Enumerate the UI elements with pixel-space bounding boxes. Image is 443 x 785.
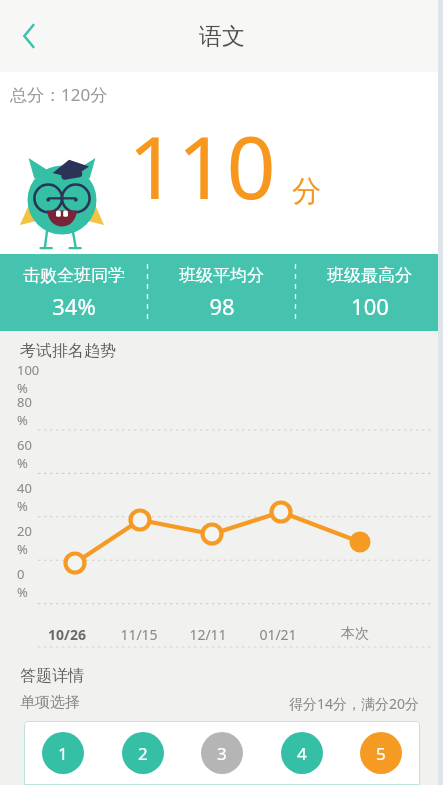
staticText: 98	[209, 291, 235, 321]
staticText: %	[17, 540, 28, 558]
staticText: 0	[17, 565, 25, 583]
staticText: 11/15	[115, 625, 163, 644]
staticText: 5	[376, 742, 386, 765]
staticText: 60	[17, 436, 32, 454]
button[interactable]: Back	[6, 14, 50, 58]
staticText: 击败全班同学	[23, 265, 125, 286]
staticText: 答题详情	[20, 666, 84, 686]
staticText: %	[17, 497, 28, 515]
staticText: 分	[292, 173, 321, 210]
staticText: 3	[217, 742, 227, 765]
staticText: %	[17, 379, 28, 393]
staticText: 100	[351, 291, 389, 321]
staticText: 语文	[199, 22, 245, 51]
staticText: 总分：120分	[10, 83, 108, 106]
staticText: %	[17, 411, 28, 429]
staticText: 本次	[331, 625, 379, 643]
button[interactable]: 2	[122, 732, 164, 774]
staticText: 10/26	[43, 625, 91, 644]
button[interactable]: 1	[42, 732, 84, 774]
button[interactable]: 4	[281, 732, 323, 774]
staticText: 班级平均分	[179, 265, 264, 286]
staticText: 40	[17, 479, 32, 497]
staticText: 34%	[52, 291, 96, 321]
button[interactable]: 3	[201, 732, 243, 774]
staticText: %	[17, 454, 28, 472]
staticText: 12/11	[184, 625, 232, 644]
staticText: 得分14分，满分20分	[289, 694, 420, 713]
button[interactable]: 击败全班同学	[0, 254, 147, 331]
staticText: 4	[297, 742, 307, 765]
staticText: 80	[17, 393, 32, 411]
button[interactable]: 5	[360, 732, 402, 774]
staticText: 100	[17, 361, 40, 379]
staticText: 考试排名趋势	[20, 341, 116, 361]
button[interactable]: 班级最高分	[296, 254, 443, 331]
staticText: 20	[17, 522, 32, 540]
staticText: 110	[128, 107, 276, 224]
staticText: 班级最高分	[327, 265, 412, 286]
staticText: 2	[138, 742, 148, 765]
staticText: %	[17, 583, 28, 601]
staticText: 单项选择	[20, 693, 80, 712]
button[interactable]: 班级平均分	[148, 254, 295, 331]
staticText: 1	[58, 742, 68, 765]
staticText: 01/21	[254, 625, 302, 644]
